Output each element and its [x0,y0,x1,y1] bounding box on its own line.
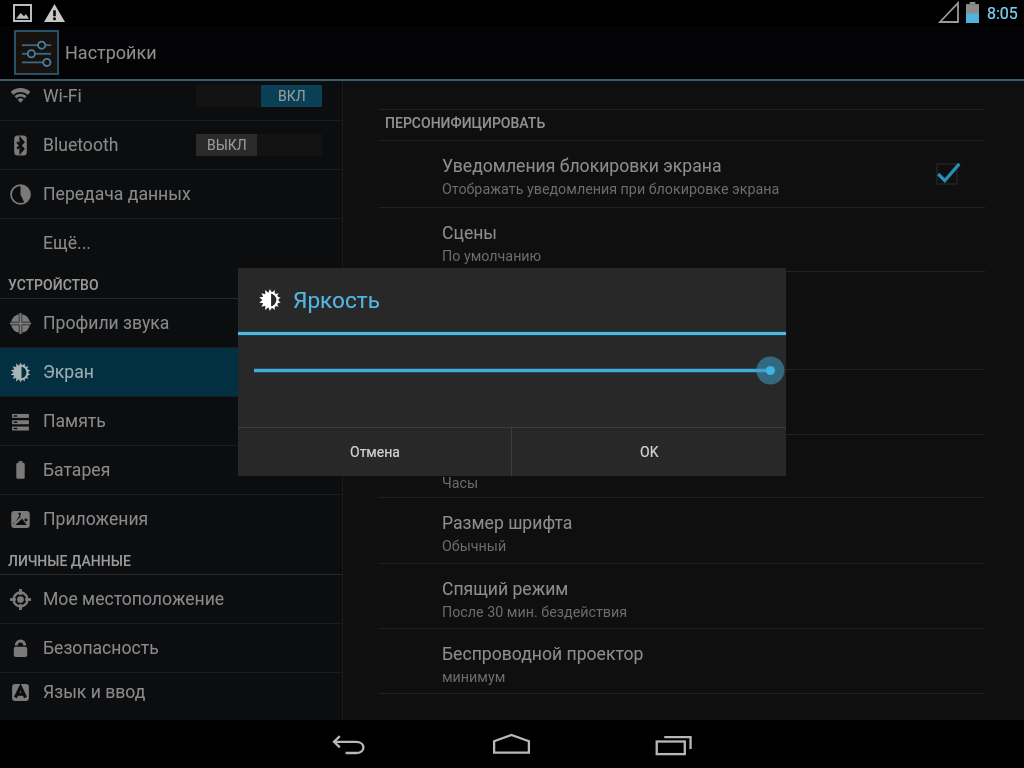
button[interactable]: Экран [0,348,342,396]
staticText: Bluetooth [43,135,119,156]
button[interactable]: Мое местоположение [0,575,342,623]
button[interactable]: Recents [594,720,754,768]
staticText: Отмена [350,444,400,460]
staticText: Уведомления блокировки экрана [442,156,722,177]
staticText: ВКЛ [278,88,306,104]
button[interactable]: Профили звука [0,299,342,347]
button[interactable]: Безопасность [0,624,342,672]
staticText: Размер шрифта [442,513,573,534]
button[interactable]: Передача данных [0,170,342,218]
button[interactable]: Уведомления блокировки экрана [343,141,1024,207]
staticText: Память [43,411,106,432]
button[interactable]: Беспроводной проектор [343,629,1024,693]
button[interactable]: Сцены [343,208,1024,271]
staticText: Wi-Fi [43,86,82,107]
staticText: Сцены [442,223,498,244]
staticText: Отображать уведомления при блокировке эк… [442,181,780,198]
button[interactable]: Память [0,397,342,445]
staticText: ВЫКЛ [207,137,247,153]
button[interactable]: Приложения [0,495,342,544]
staticText: Профили звука [43,313,170,334]
button[interactable]: Wi-Fi [0,81,342,120]
staticText: OK [640,444,659,460]
staticText: Приложения [43,509,149,530]
staticText: Батарея [43,460,111,481]
button[interactable]: Bluetooth [0,121,342,169]
button[interactable]: Home [432,720,592,768]
button[interactable]: Ещё... [0,219,342,268]
button[interactable]: Батарея [0,446,342,494]
staticText: Беспроводной проектор [442,644,644,665]
staticText: Язык и ввод [43,682,146,703]
button[interactable]: Язык и ввод [0,673,342,711]
staticText: После 30 мин. бездействия [442,604,628,621]
staticText: Настройки [65,42,157,63]
button[interactable]: Размер шрифта [343,498,1024,563]
staticText: Спящий режим [442,579,569,600]
button[interactable]: Яркость [343,370,1024,434]
staticText: Яркость [293,287,380,313]
button[interactable]: OK [512,428,786,476]
staticText: ЛИЧНЫЕ ДАННЫЕ [8,553,131,569]
staticText: Ещё... [43,233,91,254]
button[interactable]: Обои [343,272,1024,369]
staticText: УСТРОЙСТВО [8,277,99,293]
staticText: Экран [43,362,94,383]
staticText: Часы [442,475,479,492]
button[interactable]: Отмена [238,428,511,476]
staticText: По умолчанию [442,248,542,265]
staticText: Мое местоположение [43,589,225,610]
staticText: Передача данных [43,184,191,205]
staticText: Безопасность [43,638,159,659]
staticText: 8:05 [987,4,1018,23]
button[interactable]: Back [270,720,430,768]
button[interactable]: Заставка [343,435,1024,497]
button[interactable]: Спящий режим [343,564,1024,628]
staticText: ПЕРСОНИФИЦИРОВАТЬ [385,115,546,131]
staticText: Обычный [442,538,507,555]
staticText: минимум [442,669,506,686]
